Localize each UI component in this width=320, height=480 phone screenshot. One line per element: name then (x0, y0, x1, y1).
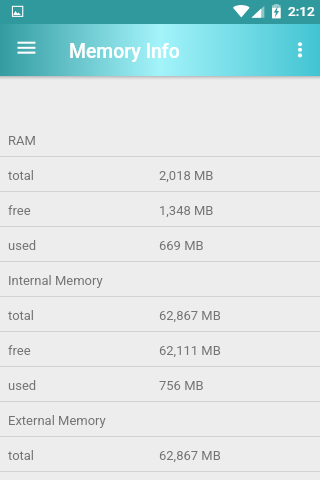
staticText: 62,111 MB (159, 343, 221, 358)
button[interactable]: total (0, 437, 320, 472)
staticText: used (8, 238, 37, 253)
staticText: 62,867 MB (159, 448, 221, 463)
staticText: 62,867 MB (159, 308, 221, 323)
staticText: 2:12 (288, 3, 315, 19)
staticText: 756 MB (159, 378, 204, 393)
staticText: used (8, 378, 37, 393)
button[interactable]: used (0, 367, 320, 402)
staticText: RAM (8, 133, 36, 148)
button[interactable]: Open navigation drawer (0, 24, 52, 76)
staticText: total (8, 308, 35, 323)
button[interactable]: RAM (0, 122, 320, 157)
staticText: 2,018 MB (159, 168, 214, 183)
button[interactable]: Internal Memory (0, 262, 320, 297)
staticText: total (8, 168, 35, 183)
staticText: External Memory (8, 413, 106, 428)
staticText: 669 MB (159, 238, 204, 253)
button[interactable]: total (0, 157, 320, 192)
button[interactable]: free (0, 332, 320, 367)
button[interactable]: External Memory (0, 402, 320, 437)
staticText: total (8, 448, 35, 463)
staticText: Internal Memory (8, 273, 103, 288)
staticText: free (8, 343, 31, 358)
button[interactable]: More options (280, 24, 320, 76)
button[interactable]: free (0, 192, 320, 227)
staticText: free (8, 203, 31, 218)
button[interactable]: total (0, 297, 320, 332)
staticText: Memory Info (69, 40, 180, 63)
button[interactable]: used (0, 227, 320, 262)
staticText: 1,348 MB (159, 203, 214, 218)
